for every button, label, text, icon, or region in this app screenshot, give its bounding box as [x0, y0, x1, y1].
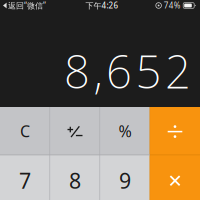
- button[interactable]: 9: [100, 155, 150, 200]
- staticText: 74%: [164, 0, 181, 11]
- staticText: 下午4:26: [85, 0, 118, 11]
- staticText: 7: [19, 166, 31, 195]
- button[interactable]: 返回“微信”: [0, 0, 48, 11]
- button[interactable]: Divide: [150, 107, 200, 155]
- button[interactable]: Clear: [0, 107, 50, 155]
- button[interactable]: Multiply: [150, 155, 200, 200]
- button[interactable]: Plus minus: [50, 107, 100, 155]
- staticText: %: [118, 120, 131, 142]
- staticText: C: [20, 120, 30, 142]
- staticText: 返回“微信”: [8, 0, 46, 11]
- button[interactable]: Percent: [100, 107, 150, 155]
- staticText: 8,652: [64, 41, 191, 101]
- staticText: 9: [119, 166, 131, 195]
- button[interactable]: 8: [50, 155, 100, 200]
- button[interactable]: 7: [0, 155, 50, 200]
- staticText: 8: [69, 166, 81, 195]
